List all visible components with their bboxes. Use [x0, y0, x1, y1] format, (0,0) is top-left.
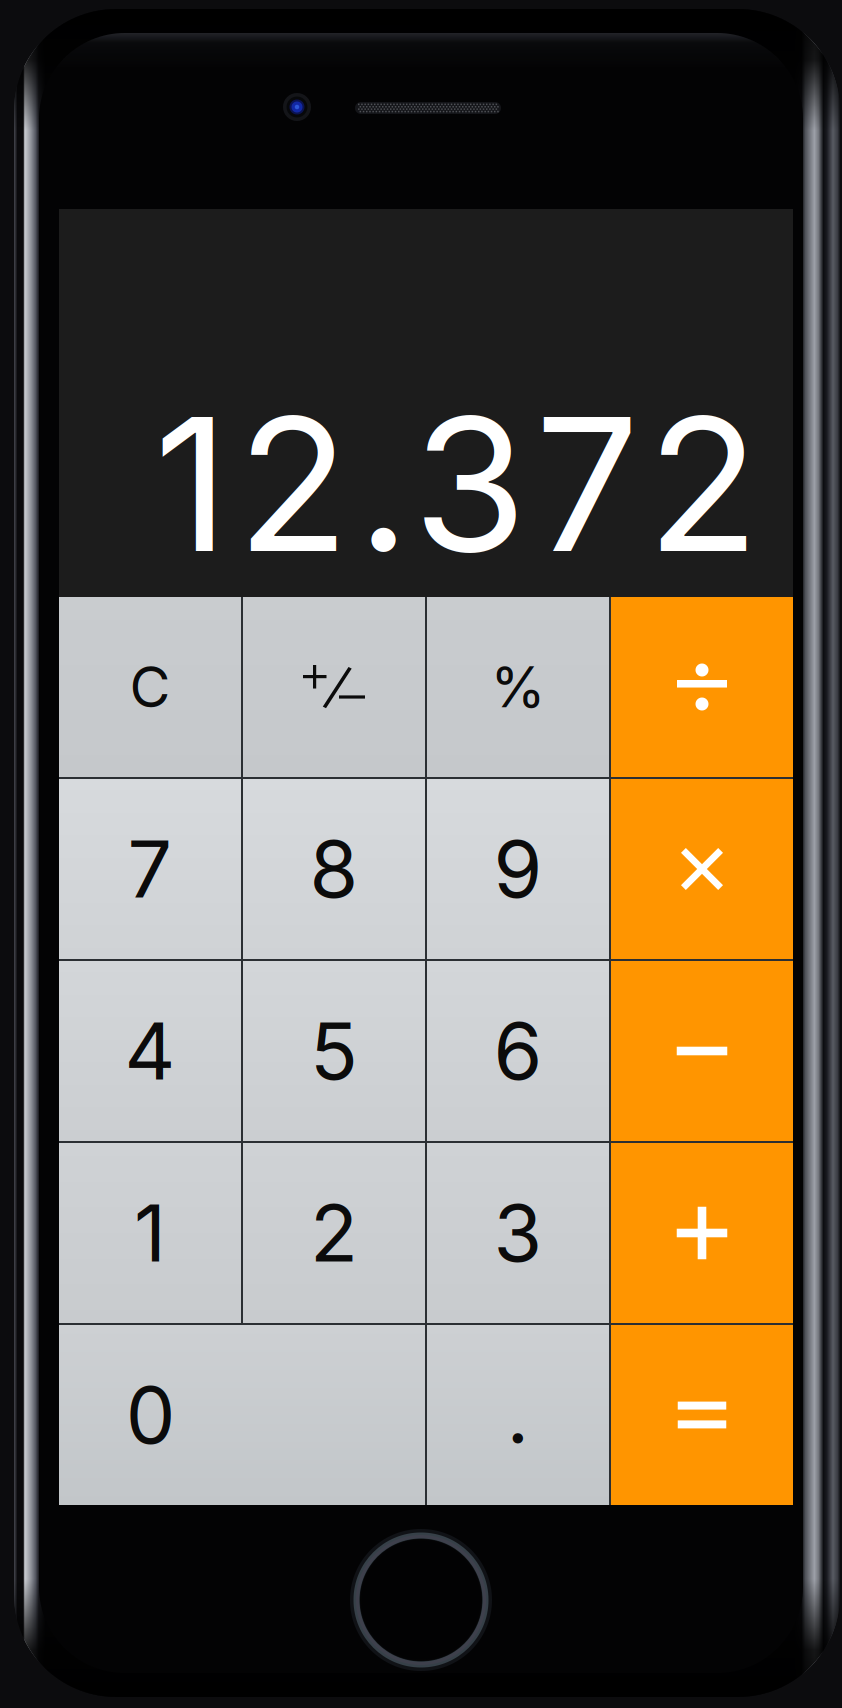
staticText: 4 — [124, 1003, 175, 1099]
staticText: 7 — [127, 821, 172, 917]
button[interactable]: 1 — [59, 1143, 241, 1323]
button[interactable]: % — [427, 597, 609, 777]
staticText: 5 — [310, 1003, 358, 1099]
staticText: 1 — [134, 1185, 166, 1281]
staticText: . — [506, 1367, 529, 1463]
button[interactable]: 4 — [59, 961, 241, 1141]
staticText: 6 — [493, 1003, 542, 1099]
staticText: 12.372 — [154, 373, 759, 595]
staticText: 2 — [310, 1185, 358, 1281]
staticText: 9 — [493, 821, 542, 917]
staticText: 0 — [126, 1367, 176, 1463]
button[interactable]: . — [427, 1325, 609, 1505]
button[interactable]: Equals — [611, 1325, 793, 1505]
button[interactable]: Home — [349, 1528, 493, 1672]
button[interactable]: Plus — [611, 1143, 793, 1323]
button[interactable]: 8 — [243, 779, 425, 959]
button[interactable]: 0 — [59, 1325, 425, 1505]
staticText: C — [129, 653, 170, 721]
staticText: 3 — [493, 1185, 542, 1281]
staticText: % — [490, 653, 545, 721]
button[interactable]: 7 — [59, 779, 241, 959]
button[interactable]: 5 — [243, 961, 425, 1141]
button[interactable]: 6 — [427, 961, 609, 1141]
button[interactable]: 9 — [427, 779, 609, 959]
staticText: 8 — [309, 821, 358, 917]
button[interactable]: C — [59, 597, 241, 777]
button[interactable]: 2 — [243, 1143, 425, 1323]
button[interactable]: Divide — [611, 597, 793, 777]
button[interactable]: Plus minus — [243, 597, 425, 777]
button[interactable]: Multiply — [611, 779, 793, 959]
button[interactable]: Minus — [611, 961, 793, 1141]
button[interactable]: 3 — [427, 1143, 609, 1323]
